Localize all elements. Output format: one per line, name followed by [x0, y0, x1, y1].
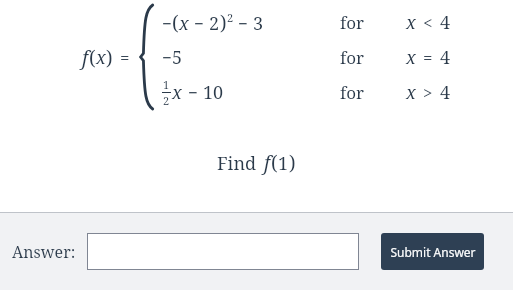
staticText: Find: [217, 151, 257, 176]
staticText: for: [340, 11, 365, 34]
staticText: 1: [163, 77, 170, 92]
staticText: x: [96, 45, 106, 70]
staticText: ): [220, 10, 227, 36]
staticText: x: [406, 10, 416, 35]
staticText: Answer:: [12, 241, 76, 263]
staticText: x: [172, 80, 182, 105]
staticText: 4: [440, 10, 451, 35]
staticText: (: [89, 45, 96, 71]
button[interactable]: [87, 233, 359, 270]
staticText: 1: [278, 151, 289, 176]
staticText: (: [271, 150, 278, 176]
staticText: ): [106, 45, 113, 71]
button[interactable]: Submit Answer: [381, 233, 484, 270]
staticText: −: [238, 12, 248, 35]
staticText: =: [120, 46, 130, 69]
staticText: f: [264, 150, 271, 176]
staticText: x: [406, 80, 416, 105]
staticText: −: [194, 12, 204, 35]
staticText: 10: [203, 80, 224, 105]
staticText: >: [423, 81, 433, 104]
staticText: f: [82, 45, 89, 71]
staticText: −: [188, 81, 198, 104]
staticText: for: [340, 46, 365, 69]
staticText: for: [340, 81, 365, 104]
staticText: x: [179, 11, 189, 36]
staticText: <: [423, 11, 433, 34]
staticText: −: [162, 46, 172, 69]
staticText: =: [423, 46, 433, 69]
staticText: 2: [227, 10, 234, 25]
staticText: 2: [209, 11, 220, 36]
staticText: 2: [163, 93, 170, 108]
staticText: 3: [253, 11, 264, 36]
staticText: (: [172, 10, 179, 36]
staticText: ): [289, 150, 296, 176]
staticText: x: [406, 45, 416, 70]
staticText: 4: [440, 80, 451, 105]
staticText: 5: [172, 45, 183, 70]
staticText: Submit Answer: [390, 244, 476, 260]
staticText: 4: [440, 45, 451, 70]
staticText: −: [162, 12, 172, 35]
